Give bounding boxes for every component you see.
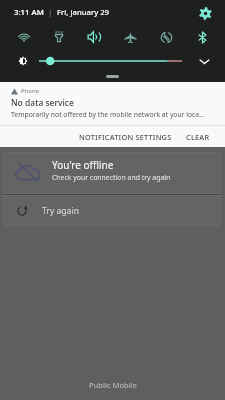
staticText: | bbox=[44, 7, 57, 18]
button[interactable]: NOTIFICATION SETTINGS bbox=[74, 126, 177, 147]
staticText: You're offline bbox=[52, 158, 114, 172]
staticText: Fri, January 29 bbox=[57, 7, 110, 18]
staticText: No data service bbox=[11, 97, 74, 109]
button[interactable]: Try again bbox=[3, 195, 221, 226]
button[interactable]: Expand bbox=[195, 52, 213, 70]
button[interactable]: Bluetooth bbox=[184, 23, 220, 51]
staticText: CLEAR bbox=[186, 132, 210, 142]
button[interactable]: Wi-Fi bbox=[6, 23, 41, 51]
button[interactable]: Auto rotate bbox=[148, 23, 184, 51]
staticText: Phone bbox=[21, 87, 40, 95]
staticText: 3:11 AM bbox=[14, 7, 44, 18]
staticText: Try again bbox=[42, 205, 79, 217]
button[interactable]: Airplane mode bbox=[112, 23, 148, 51]
button[interactable]: Settings bbox=[196, 4, 214, 22]
button[interactable]: CLEAR bbox=[177, 126, 219, 147]
button[interactable]: Flashlight bbox=[41, 23, 76, 51]
staticText: Check your connection and try again bbox=[52, 173, 171, 182]
button[interactable]: Sound bbox=[76, 23, 112, 51]
button[interactable]: Brightness bbox=[34, 54, 187, 68]
staticText: Public Mobile bbox=[89, 380, 137, 390]
staticText: Temporarily not offered by the mobile ne… bbox=[11, 110, 205, 119]
staticText: NOTIFICATION SETTINGS bbox=[79, 132, 172, 142]
